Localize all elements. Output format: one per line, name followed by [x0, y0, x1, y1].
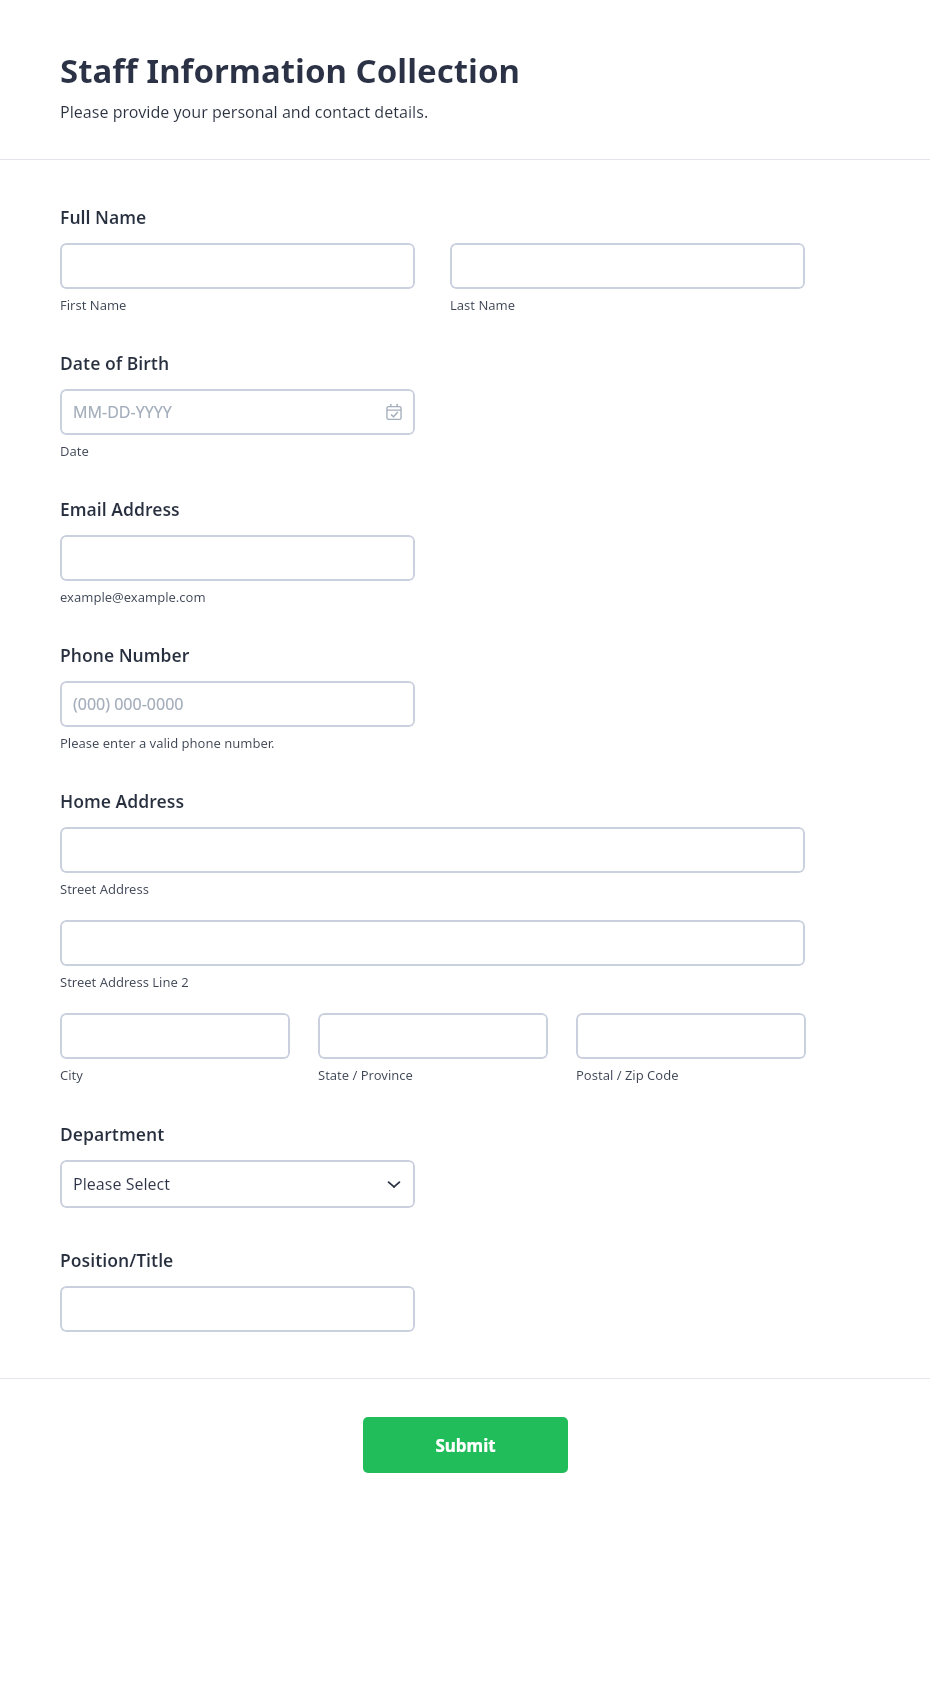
button[interactable]: Position or Title [60, 1286, 415, 1332]
button[interactable]: Postal / Zip Code [576, 1013, 806, 1059]
staticText: Street Address [60, 880, 149, 898]
staticText: Phone Number [60, 643, 190, 667]
button[interactable]: First Name [60, 243, 415, 289]
staticText: Staff Information Collection [60, 48, 521, 93]
button[interactable]: City [60, 1013, 290, 1059]
staticText: State / Province [318, 1066, 413, 1084]
button[interactable]: Submit [363, 1417, 568, 1473]
staticText: Last Name [450, 296, 516, 314]
button[interactable]: (000) 000-0000 [60, 681, 415, 727]
button[interactable]: MM-DD-YYYY [60, 389, 415, 435]
button[interactable]: Street Address Line 2 [60, 920, 805, 966]
staticText: Please Select [73, 1173, 386, 1195]
staticText: Submit [435, 1434, 496, 1457]
staticText: First Name [60, 296, 127, 314]
button[interactable]: Email Address [60, 535, 415, 581]
staticText: Home Address [60, 789, 185, 813]
staticText: City [60, 1066, 83, 1084]
button[interactable]: Last Name [450, 243, 805, 289]
staticText: example@example.com [60, 588, 206, 606]
staticText: Please enter a valid phone number. [60, 734, 275, 752]
button[interactable]: Please Select [60, 1160, 415, 1208]
staticText: Department [60, 1122, 165, 1146]
staticText: Street Address Line 2 [60, 973, 189, 991]
staticText: Please provide your personal and contact… [60, 101, 429, 123]
staticText: Full Name [60, 205, 147, 229]
staticText: Date [60, 442, 89, 460]
button[interactable]: Street Address [60, 827, 805, 873]
staticText: Date of Birth [60, 351, 170, 375]
staticText: Postal / Zip Code [576, 1066, 679, 1084]
staticText: MM-DD-YYYY [73, 401, 386, 423]
staticText: (000) 000-0000 [73, 693, 402, 715]
staticText: Position/Title [60, 1248, 174, 1272]
staticText: Email Address [60, 497, 180, 521]
button[interactable]: State / Province [318, 1013, 548, 1059]
